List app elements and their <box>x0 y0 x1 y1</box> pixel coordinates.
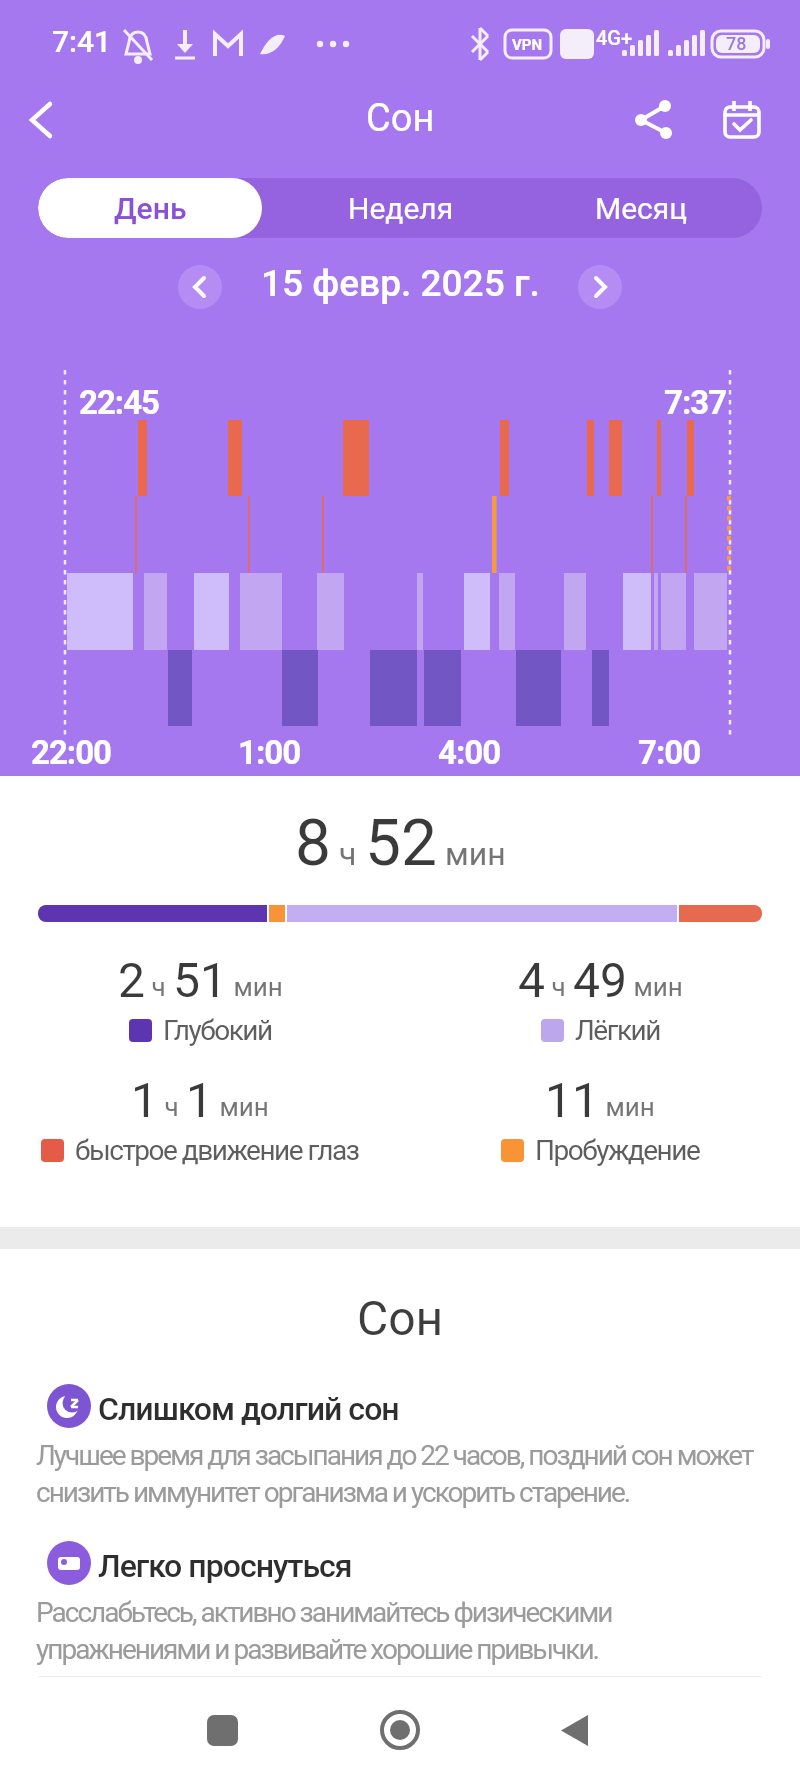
button[interactable]: Месяц <box>521 178 762 238</box>
staticText: Сон <box>357 1290 444 1346</box>
staticText: Слишком долгий сон <box>98 1390 399 1428</box>
staticText: 2 <box>118 952 145 1008</box>
staticText: 8 <box>295 806 331 881</box>
staticText: День <box>114 191 187 226</box>
staticText: мин <box>627 972 683 1002</box>
staticText: Месяц <box>595 191 688 226</box>
staticText: 15 февр. 2025 г. <box>261 262 540 305</box>
staticText: 78 <box>726 33 747 54</box>
staticText: 7:41 <box>52 24 112 59</box>
staticText: VPN <box>512 36 543 54</box>
staticText: 7:37 <box>664 383 727 422</box>
staticText: Неделя <box>348 191 454 226</box>
staticText: 22:00 <box>31 733 112 772</box>
staticText: ч <box>545 972 573 1002</box>
staticText: 4 <box>518 952 545 1008</box>
staticText: мин <box>227 972 283 1002</box>
button[interactable] <box>578 265 622 309</box>
staticText: ч <box>158 1092 186 1122</box>
button[interactable] <box>630 96 678 144</box>
staticText: 1 <box>186 1072 213 1128</box>
staticText: 52 <box>365 806 437 881</box>
staticText: быстрое движение глаз <box>75 1134 359 1167</box>
staticText: ч <box>331 835 365 873</box>
button[interactable] <box>548 1704 600 1756</box>
staticText: 11 <box>545 1072 599 1128</box>
staticText: Пробуждение <box>535 1134 700 1167</box>
staticText: Глубокий <box>163 1014 272 1047</box>
button[interactable] <box>374 1704 426 1756</box>
staticText: 4G+ <box>596 26 633 49</box>
button[interactable]: Неделя <box>280 178 521 238</box>
staticText: 1 <box>131 1072 158 1128</box>
button[interactable] <box>718 94 766 142</box>
staticText: мин <box>213 1092 269 1122</box>
staticText: 51 <box>173 952 227 1008</box>
staticText: 4:00 <box>438 733 501 772</box>
staticText: 49 <box>573 952 627 1008</box>
staticText: Лучшее время для засыпания до 22 часов, … <box>36 1439 753 1509</box>
staticText: 22:45 <box>79 383 160 422</box>
button[interactable] <box>196 1704 248 1756</box>
staticText: 7:00 <box>638 733 701 772</box>
staticText: Сон <box>366 96 435 141</box>
staticText: ч <box>145 972 173 1002</box>
button[interactable]: День <box>38 178 262 238</box>
button[interactable] <box>16 98 64 142</box>
staticText: Расслабьтесь, активно занимайтесь физиче… <box>36 1596 612 1666</box>
staticText: мин <box>437 835 506 873</box>
button[interactable] <box>178 265 222 309</box>
staticText: Лёгкий <box>575 1014 660 1047</box>
staticText: Легко проснуться <box>98 1547 352 1585</box>
staticText: 1:00 <box>238 733 301 772</box>
staticText: мин <box>599 1092 655 1122</box>
